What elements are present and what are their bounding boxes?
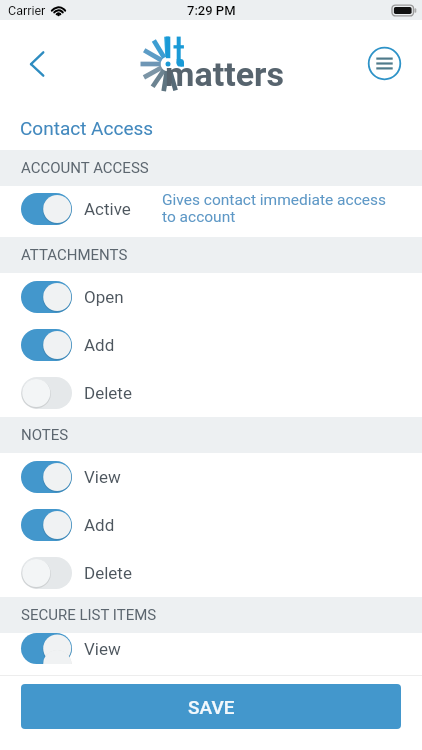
button[interactable]: Add [0, 321, 422, 369]
staticText: Active [84, 199, 131, 219]
button[interactable]: Delete [0, 549, 422, 597]
staticText: Carrier [8, 3, 46, 18]
staticText: matters [165, 54, 284, 94]
staticText: Add [84, 335, 115, 355]
button[interactable]: View [0, 633, 422, 664]
staticText: Add [84, 515, 115, 535]
button[interactable]: Add [0, 501, 422, 549]
staticText: ACCOUNT ACCESS [21, 159, 149, 177]
staticText: View [84, 639, 121, 659]
staticText: ATTACHMENTS [21, 246, 128, 264]
button[interactable]: Back [16, 41, 58, 83]
button[interactable]: View [0, 453, 422, 501]
staticText: 7:29 PM [187, 3, 236, 18]
button[interactable]: Open [0, 273, 422, 321]
button[interactable]: Delete [0, 369, 422, 417]
staticText: SAVE [188, 696, 235, 718]
staticText: SECURE LIST ITEMS [21, 606, 157, 624]
staticText: Delete [84, 563, 132, 583]
button[interactable]: SAVE [21, 684, 401, 729]
staticText: Gives contact immediate access to accoun… [162, 191, 398, 226]
button[interactable]: Active [0, 186, 422, 237]
staticText: Open [84, 287, 124, 307]
staticText: View [84, 467, 121, 487]
staticText: Contact Access [20, 117, 154, 139]
staticText: NOTES [21, 426, 69, 444]
button[interactable]: Menu [364, 43, 405, 84]
staticText: Delete [84, 383, 132, 403]
